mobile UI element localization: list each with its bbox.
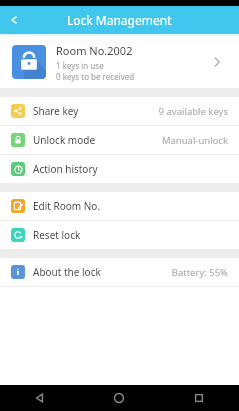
staticText: Edit Room No. — [33, 199, 101, 213]
button[interactable]: Share key — [0, 97, 239, 125]
other: Reset lock — [11, 228, 25, 242]
staticText: Battery: 55% — [171, 266, 228, 279]
staticText: About the lock — [33, 265, 101, 279]
staticText: 9 available keys — [158, 105, 228, 118]
other: Unlock mode — [11, 133, 25, 147]
button[interactable]: Edit Room No. — [0, 192, 239, 220]
staticText: Reset lock — [33, 228, 81, 242]
staticText: Unlock mode — [33, 133, 96, 147]
staticText: 1 keys in use — [56, 60, 104, 71]
button[interactable]: Back — [0, 385, 79, 411]
button[interactable]: Back — [0, 6, 28, 34]
button[interactable]: Recent apps — [159, 385, 239, 411]
other: Share key — [11, 104, 25, 118]
button[interactable]: Home — [79, 385, 159, 411]
other: Open room details — [207, 52, 227, 72]
other: Action history — [11, 162, 25, 176]
button[interactable]: Reset lock — [0, 221, 239, 249]
staticText: Share key — [33, 104, 79, 118]
other: Edit Room No. — [11, 199, 25, 213]
other: About the lock — [11, 265, 25, 279]
staticText: 0 keys to be received — [56, 71, 135, 82]
button[interactable]: Action history — [0, 155, 239, 183]
staticText: Action history — [33, 162, 98, 176]
staticText: Lock Management — [67, 12, 172, 28]
button[interactable]: Unlock mode — [0, 126, 239, 154]
button[interactable]: About the lock — [0, 258, 239, 286]
staticText: Room No.2002 — [56, 43, 133, 58]
staticText: Manual-unlock — [161, 134, 228, 147]
button[interactable]: Room No.2002 — [0, 36, 239, 88]
